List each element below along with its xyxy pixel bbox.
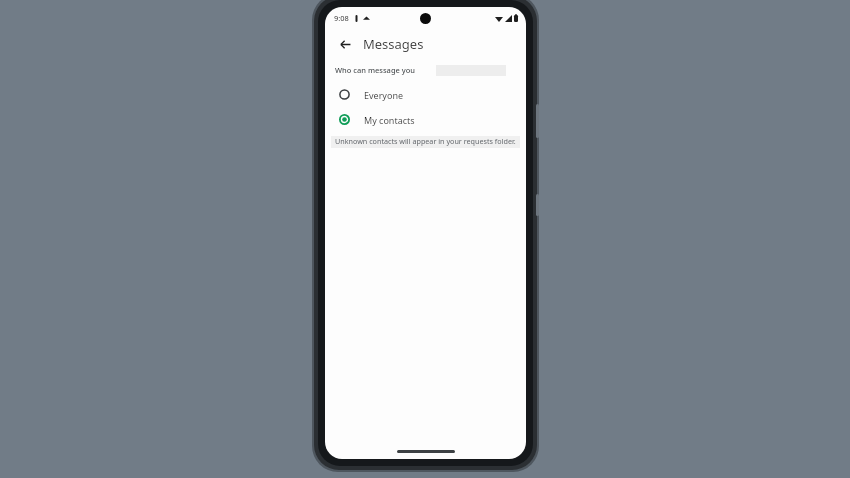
- staticText: My contacts: [364, 114, 415, 126]
- staticText: Everyone: [364, 89, 404, 101]
- staticText: Unknown contacts will appear in your req…: [335, 136, 516, 146]
- button[interactable]: Back: [334, 33, 356, 55]
- button[interactable]: My contacts: [325, 107, 526, 132]
- staticText: Who can message you: [335, 65, 416, 75]
- staticText: 9:08: [334, 13, 349, 23]
- button[interactable]: Everyone: [325, 82, 526, 107]
- staticText: Messages: [363, 35, 424, 53]
